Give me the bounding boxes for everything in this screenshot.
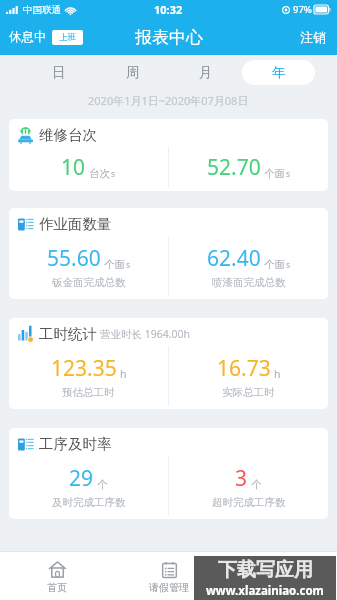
button[interactable]: 休息中 <box>9 29 83 45</box>
staticText: 喷漆面完成总数 <box>212 276 286 289</box>
staticText: 2020年1月1日~2020年07月08日 <box>88 93 249 108</box>
staticText: www.xlazainiao.com <box>206 583 324 599</box>
staticText: 日 <box>52 64 66 81</box>
staticText: 月 <box>199 64 213 81</box>
other: 我的 <box>272 560 291 579</box>
button[interactable]: 作业面数量 <box>9 208 328 299</box>
staticText: 台次 <box>89 167 110 180</box>
staticText: 中国联通 <box>23 4 61 16</box>
staticText: 个面 <box>264 167 285 180</box>
staticText: 个面 <box>264 258 285 271</box>
button[interactable]: 月 <box>169 60 242 85</box>
staticText: 123.35 <box>51 354 117 383</box>
staticText: 52.70 <box>207 153 261 182</box>
staticText: 及时完成工序数 <box>52 496 126 509</box>
staticText: 个面 <box>104 258 125 271</box>
staticText: 工序及时率 <box>39 435 112 453</box>
staticText: 上班 <box>59 32 76 43</box>
button[interactable]: 日 <box>22 60 96 85</box>
staticText: 29 <box>69 464 94 493</box>
staticText: 工时统计 <box>39 325 97 343</box>
staticText: 周 <box>126 64 140 81</box>
staticText: 钣金面完成总数 <box>52 276 126 289</box>
button[interactable]: 工序及时率 <box>9 428 328 519</box>
staticText: 97% <box>293 3 312 16</box>
staticText: 10 <box>61 153 86 182</box>
staticText: 16.73 <box>217 354 271 383</box>
staticText: 报表中心 <box>135 27 203 48</box>
staticText: 实际总工时 <box>222 386 275 399</box>
staticText: 个 <box>97 478 108 491</box>
other: 首页 <box>48 560 67 579</box>
button[interactable]: 年 <box>242 60 315 85</box>
staticText: 营业时长 1964.00h <box>100 327 191 341</box>
button[interactable]: 工时统计 <box>9 318 328 409</box>
staticText: h <box>274 367 281 381</box>
staticText: 预估总工时 <box>62 386 115 399</box>
staticText: s <box>286 259 291 271</box>
staticText: 注销 <box>300 29 326 45</box>
staticText: s <box>111 168 116 180</box>
staticText: s <box>286 168 291 180</box>
button[interactable]: 维修台次 <box>9 119 328 191</box>
staticText: 超时完成工序数 <box>212 496 286 509</box>
staticText: 首页 <box>47 581 67 594</box>
staticText: 个 <box>251 478 262 491</box>
staticText: 3 <box>235 464 248 493</box>
staticText: 下载写应用 <box>218 558 313 582</box>
button[interactable]: 我的 <box>225 552 337 600</box>
staticText: s <box>126 259 131 271</box>
staticText: 维修台次 <box>39 126 97 144</box>
button[interactable]: 首页 <box>0 552 113 600</box>
staticText: 请假管理 <box>149 581 189 594</box>
staticText: 62.40 <box>207 244 261 273</box>
other: 请假管理 <box>160 560 179 579</box>
staticText: 10:32 <box>154 2 183 17</box>
staticText: 作业面数量 <box>39 215 112 233</box>
staticText: 休息中 <box>9 29 47 45</box>
staticText: 年 <box>272 64 286 81</box>
button[interactable]: 请假管理 <box>113 552 225 600</box>
button[interactable]: 注销 <box>289 23 337 51</box>
staticText: h <box>120 367 127 381</box>
staticText: 55.60 <box>47 244 101 273</box>
button[interactable]: 周 <box>96 60 169 85</box>
staticText: 我的 <box>271 581 291 594</box>
